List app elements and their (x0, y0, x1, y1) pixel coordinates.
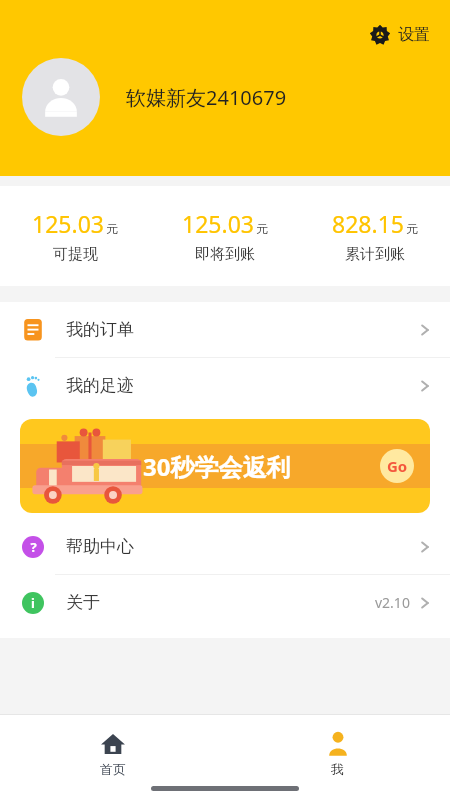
button[interactable]: ? (0, 519, 450, 574)
staticText: 125.03 (182, 208, 254, 239)
staticText: 元 (256, 221, 268, 236)
staticText: Go (387, 456, 408, 476)
other: Settings (369, 24, 391, 46)
staticText: 帮助中心 (66, 536, 134, 557)
staticText: 设置 (398, 25, 430, 45)
staticText: 关于 (66, 592, 100, 613)
staticText: 元 (106, 221, 118, 236)
staticText: v2.10 (375, 593, 410, 612)
button[interactable]: Avatar (22, 58, 100, 136)
other: 首页 (100, 731, 126, 757)
staticText: 828.15 (332, 208, 404, 239)
button[interactable]: Settings (365, 22, 434, 48)
staticText: 元 (406, 221, 418, 236)
button[interactable]: 828.15 (300, 206, 450, 266)
staticText: 即将到账 (195, 245, 255, 264)
button[interactable]: 125.03 (150, 206, 300, 266)
button[interactable]: 我 (225, 727, 450, 781)
staticText: 软媒新友2410679 (126, 84, 287, 111)
staticText: 我的足迹 (66, 375, 134, 396)
staticText: 我 (331, 761, 344, 777)
button[interactable]: 我的足迹 (0, 358, 450, 413)
staticText: 125.03 (32, 208, 104, 239)
staticText: 我的订单 (66, 319, 134, 340)
button[interactable]: 30秒学会返利 (20, 419, 430, 513)
staticText: 首页 (100, 761, 126, 777)
staticText: 可提现 (53, 245, 98, 264)
other: 我 (325, 731, 351, 757)
staticText: i (31, 594, 35, 612)
staticText: 30秒学会返利 (143, 450, 291, 483)
staticText: 累计到账 (345, 245, 405, 264)
button[interactable]: 125.03 (0, 206, 150, 266)
button[interactable]: 首页 (0, 727, 225, 781)
button[interactable]: i (0, 575, 450, 630)
staticText: ? (30, 538, 37, 556)
button[interactable]: 我的订单 (0, 302, 450, 357)
